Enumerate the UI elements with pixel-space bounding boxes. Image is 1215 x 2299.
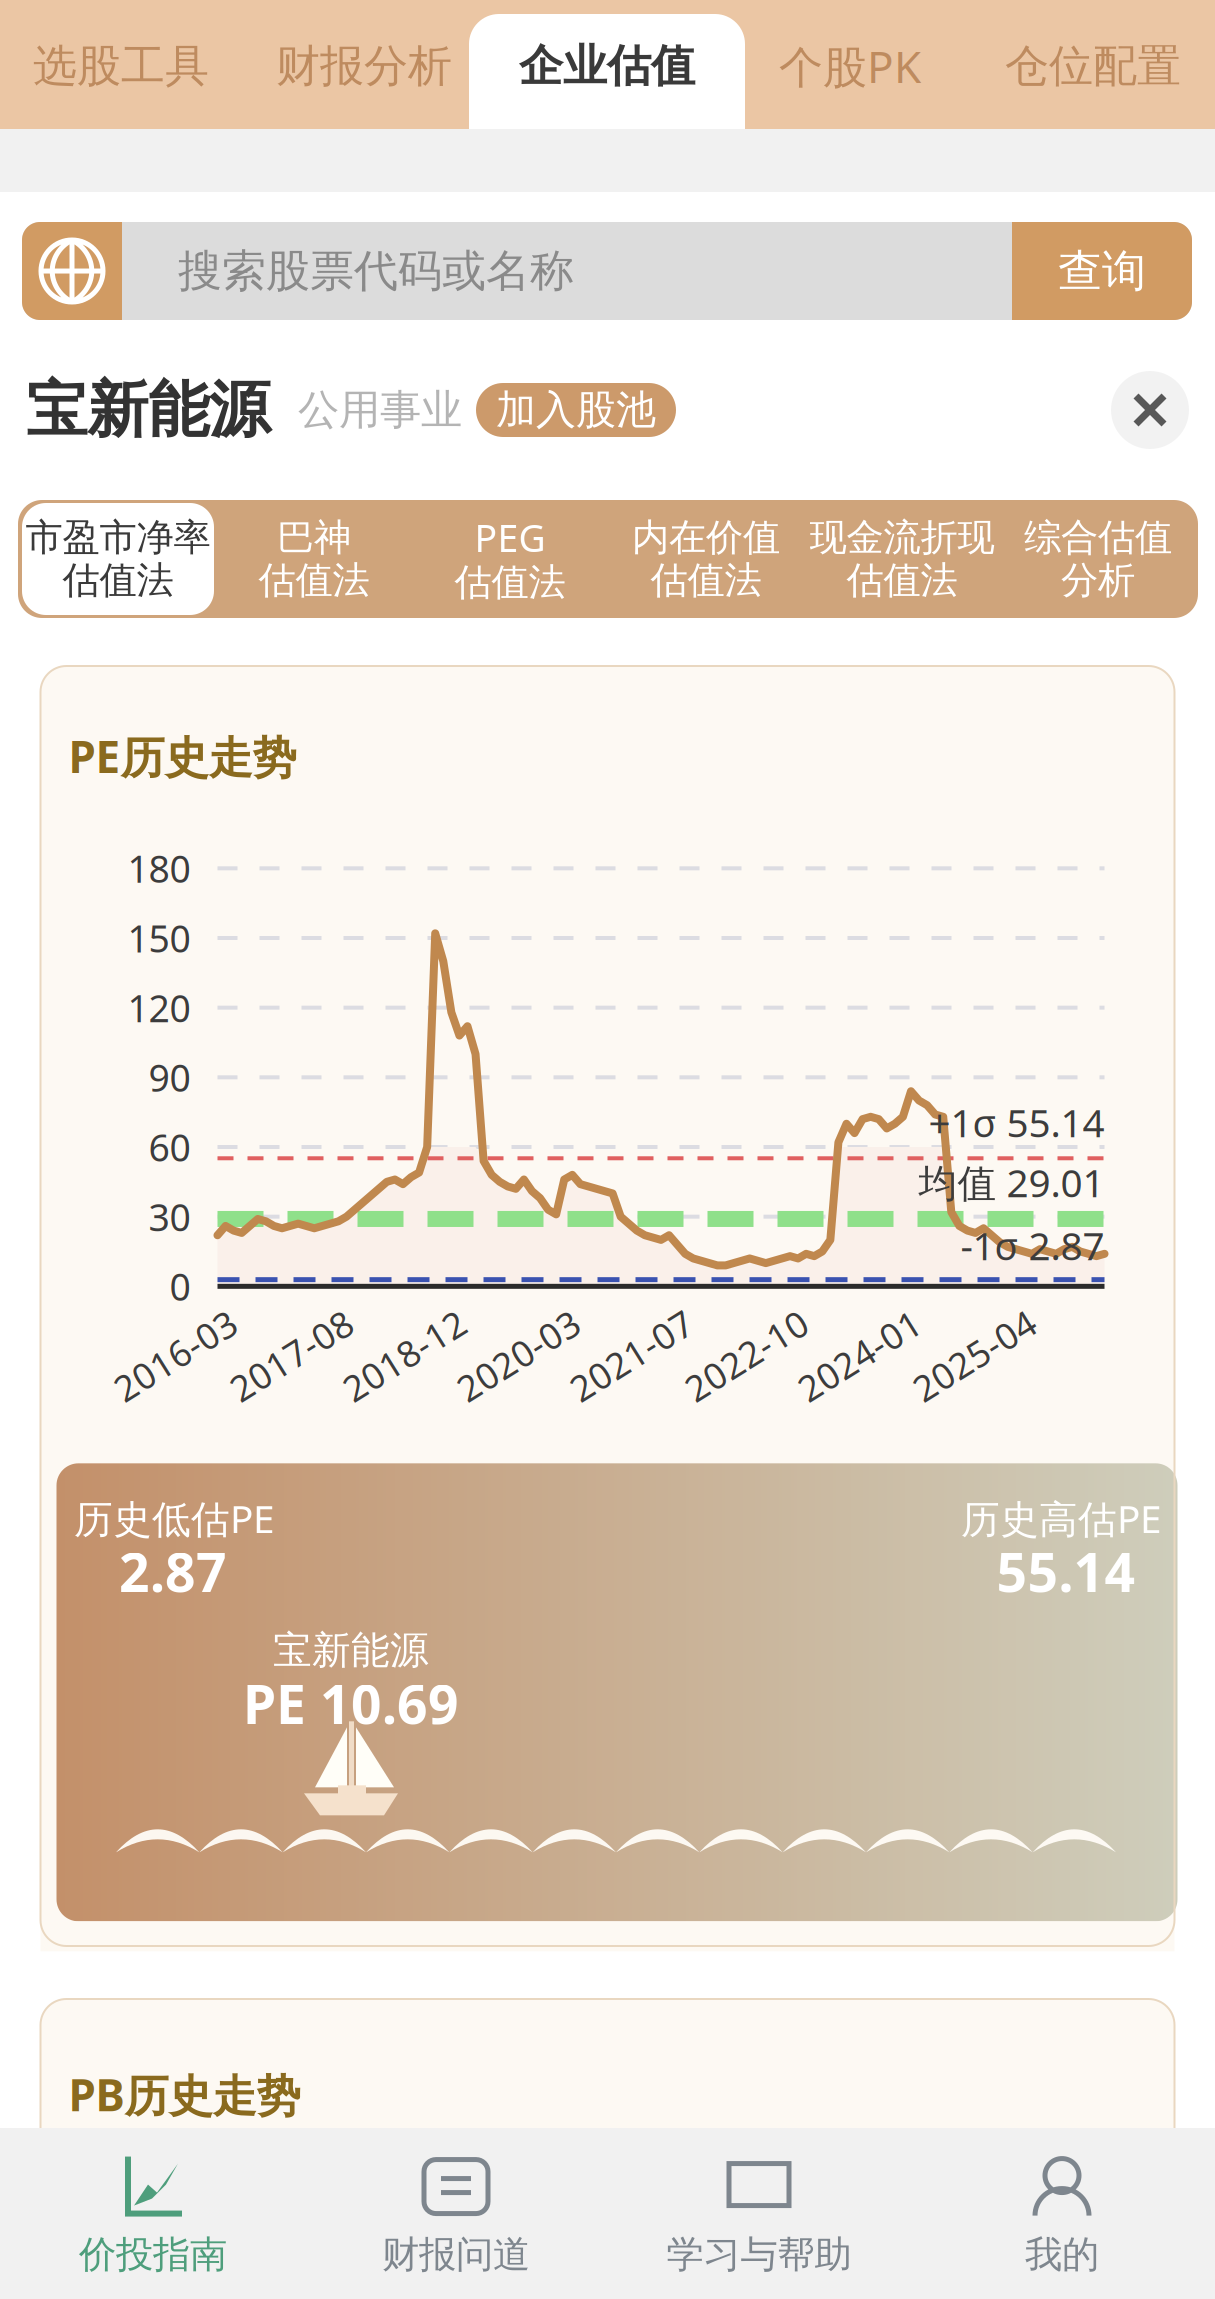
staticText: 综合估值 — [1024, 515, 1172, 560]
staticText: 2017-08 — [222, 1331, 360, 1379]
staticText: 2021-07 — [562, 1331, 700, 1379]
staticText: 估值法 — [62, 557, 173, 603]
staticText: 宝新能源 — [273, 1627, 429, 1674]
staticText: 180 — [127, 843, 190, 893]
staticText: 估值法 — [258, 557, 369, 603]
staticText: 120 — [127, 983, 190, 1032]
staticText: 市盈市净率 — [25, 515, 210, 560]
button[interactable]: 加入股池 — [476, 383, 676, 437]
staticText: 2020-03 — [449, 1331, 587, 1379]
staticText: 内在价值 — [632, 515, 780, 560]
staticText: PE历史走势 — [68, 727, 296, 785]
staticText: 财报问道 — [382, 2232, 530, 2277]
button[interactable]: PEG — [412, 499, 608, 619]
button[interactable]: 巴神 — [216, 499, 412, 619]
staticText: 估值法 — [454, 559, 565, 605]
staticText: 90 — [148, 1052, 190, 1102]
staticText: PEG — [474, 513, 545, 562]
button[interactable]: 财报分析 — [243, 0, 486, 129]
button[interactable]: 查询 — [1012, 222, 1192, 320]
button[interactable]: 现金流折现 — [804, 499, 1000, 619]
staticText: 2.87 — [119, 1536, 227, 1607]
staticText: 估值法 — [846, 557, 957, 603]
staticText: 均值 29.01 — [918, 1157, 1104, 1208]
staticText: 宝新能源 — [26, 372, 270, 448]
staticText: 我的 — [1025, 2232, 1099, 2277]
button[interactable]: 选股工具 — [0, 0, 243, 129]
staticText: 150 — [127, 913, 190, 963]
button[interactable]: 我的 — [910, 2128, 1213, 2299]
button[interactable]: 综合估值 — [1000, 499, 1196, 619]
staticText: 55.14 — [996, 1536, 1135, 1607]
button[interactable]: 关闭 — [1111, 371, 1189, 449]
staticText: 历史高估PE — [961, 1493, 1161, 1544]
staticText: 企业估值 — [519, 39, 695, 93]
button[interactable]: 财报问道 — [304, 2128, 607, 2299]
staticText: 60 — [148, 1122, 190, 1172]
staticText: 财报分析 — [276, 39, 452, 93]
button[interactable]: 学习与帮助 — [607, 2128, 910, 2299]
staticText: 巴神 — [277, 515, 351, 560]
staticText: 选股工具 — [33, 39, 209, 93]
staticText: 2022-10 — [677, 1331, 815, 1379]
staticText: 历史低估PE — [74, 1493, 274, 1544]
staticText: 加入股池 — [496, 385, 656, 434]
staticText: +1σ 55.14 — [928, 1097, 1104, 1148]
staticText: 30 — [148, 1192, 190, 1241]
button[interactable]: 企业估值 — [486, 0, 729, 129]
staticText: 搜索股票代码或名称 — [178, 244, 574, 298]
staticText: PB历史走势 — [68, 2065, 300, 2124]
button[interactable]: 价投指南 — [1, 2128, 304, 2299]
button[interactable]: 仓位配置 — [972, 0, 1215, 129]
staticText: 2018-12 — [335, 1331, 473, 1379]
staticText: 分析 — [1061, 557, 1135, 603]
button[interactable]: 市盈市净率 — [20, 499, 216, 619]
button[interactable]: 内在价值 — [608, 499, 804, 619]
staticText: 学习与帮助 — [666, 2232, 851, 2277]
staticText: 2025-04 — [905, 1331, 1043, 1379]
staticText: PE 10.69 — [243, 1668, 459, 1739]
staticText: 2016-03 — [106, 1331, 244, 1379]
button[interactable]: 个股PK — [729, 0, 972, 129]
staticText: 仓位配置 — [1005, 39, 1181, 93]
staticText: 现金流折现 — [809, 515, 994, 560]
staticText: 个股PK — [779, 37, 921, 95]
staticText: -1σ 2.87 — [960, 1220, 1104, 1271]
staticText: 估值法 — [650, 557, 761, 603]
staticText: 价投指南 — [79, 2232, 227, 2277]
staticText: 查询 — [1058, 244, 1146, 298]
staticText: 公用事业 — [298, 385, 462, 435]
staticText: 0 — [169, 1261, 190, 1311]
staticText: 2024-01 — [790, 1331, 928, 1379]
